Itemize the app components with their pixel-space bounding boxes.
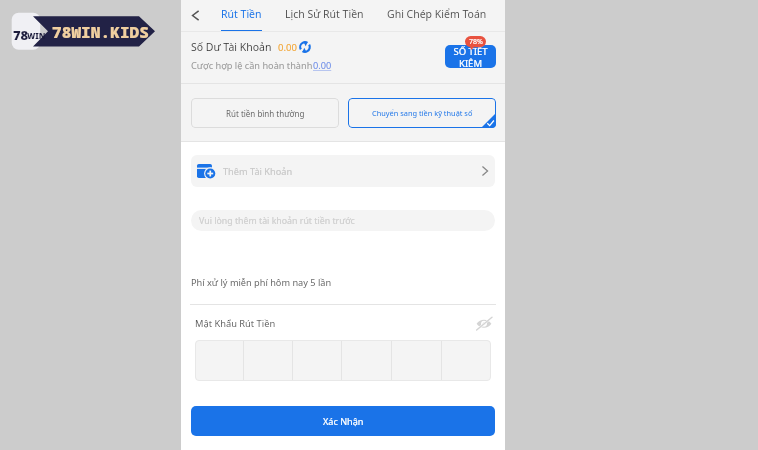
staticText: 0.00 [313, 59, 332, 72]
staticText: 78% [469, 37, 483, 47]
button[interactable]: Rút Tiền [219, 0, 264, 32]
staticText: Rút Tiền [221, 7, 262, 21]
button[interactable]: Thêm Tài Khoản [191, 155, 495, 187]
staticText: WIN [27, 30, 46, 41]
button[interactable]: Chuyển sang tiền kỹ thuật số [348, 98, 496, 128]
staticText: Xác Nhận [323, 415, 364, 427]
staticText: Thêm Tài Khoản [223, 165, 293, 178]
staticText: Số Dư Tài Khoản [191, 40, 272, 54]
staticText: Ghi Chép Kiểm Toán [387, 7, 487, 21]
staticText: Lịch Sử Rút Tiền [285, 7, 364, 21]
button[interactable]: Xác Nhận [191, 406, 495, 436]
button[interactable]: Ghi Chép Kiểm Toán [385, 0, 489, 32]
staticText: 78 [13, 26, 29, 44]
button[interactable]: Back [184, 4, 206, 26]
staticText: Rút tiền bình thường [226, 108, 305, 119]
button[interactable]: Lịch Sử Rút Tiền [283, 0, 366, 32]
button[interactable]: Vui lòng thêm tài khoản rút tiền trước [191, 210, 495, 231]
staticText: Mật Khẩu Rút Tiền [195, 317, 276, 330]
staticText: 78WIN.KIDS [52, 21, 150, 43]
staticText: SỐ TIẾT KIỆM [453, 45, 488, 68]
staticText: 0.00 [278, 41, 297, 54]
staticText: Vui lòng thêm tài khoản rút tiền trước [199, 215, 355, 227]
staticText: Phí xử lý miễn phí hôm nay 5 lần [191, 276, 332, 289]
button[interactable]: Show password [476, 317, 492, 330]
button[interactable]: Rút tiền bình thường [191, 98, 339, 128]
button[interactable]: SỐ TIẾT KIỆM [445, 45, 496, 68]
staticText: Cược hợp lệ cần hoàn thành [191, 59, 313, 72]
button[interactable]: Refresh balance [299, 40, 311, 54]
staticText: Chuyển sang tiền kỹ thuật số [372, 108, 473, 118]
